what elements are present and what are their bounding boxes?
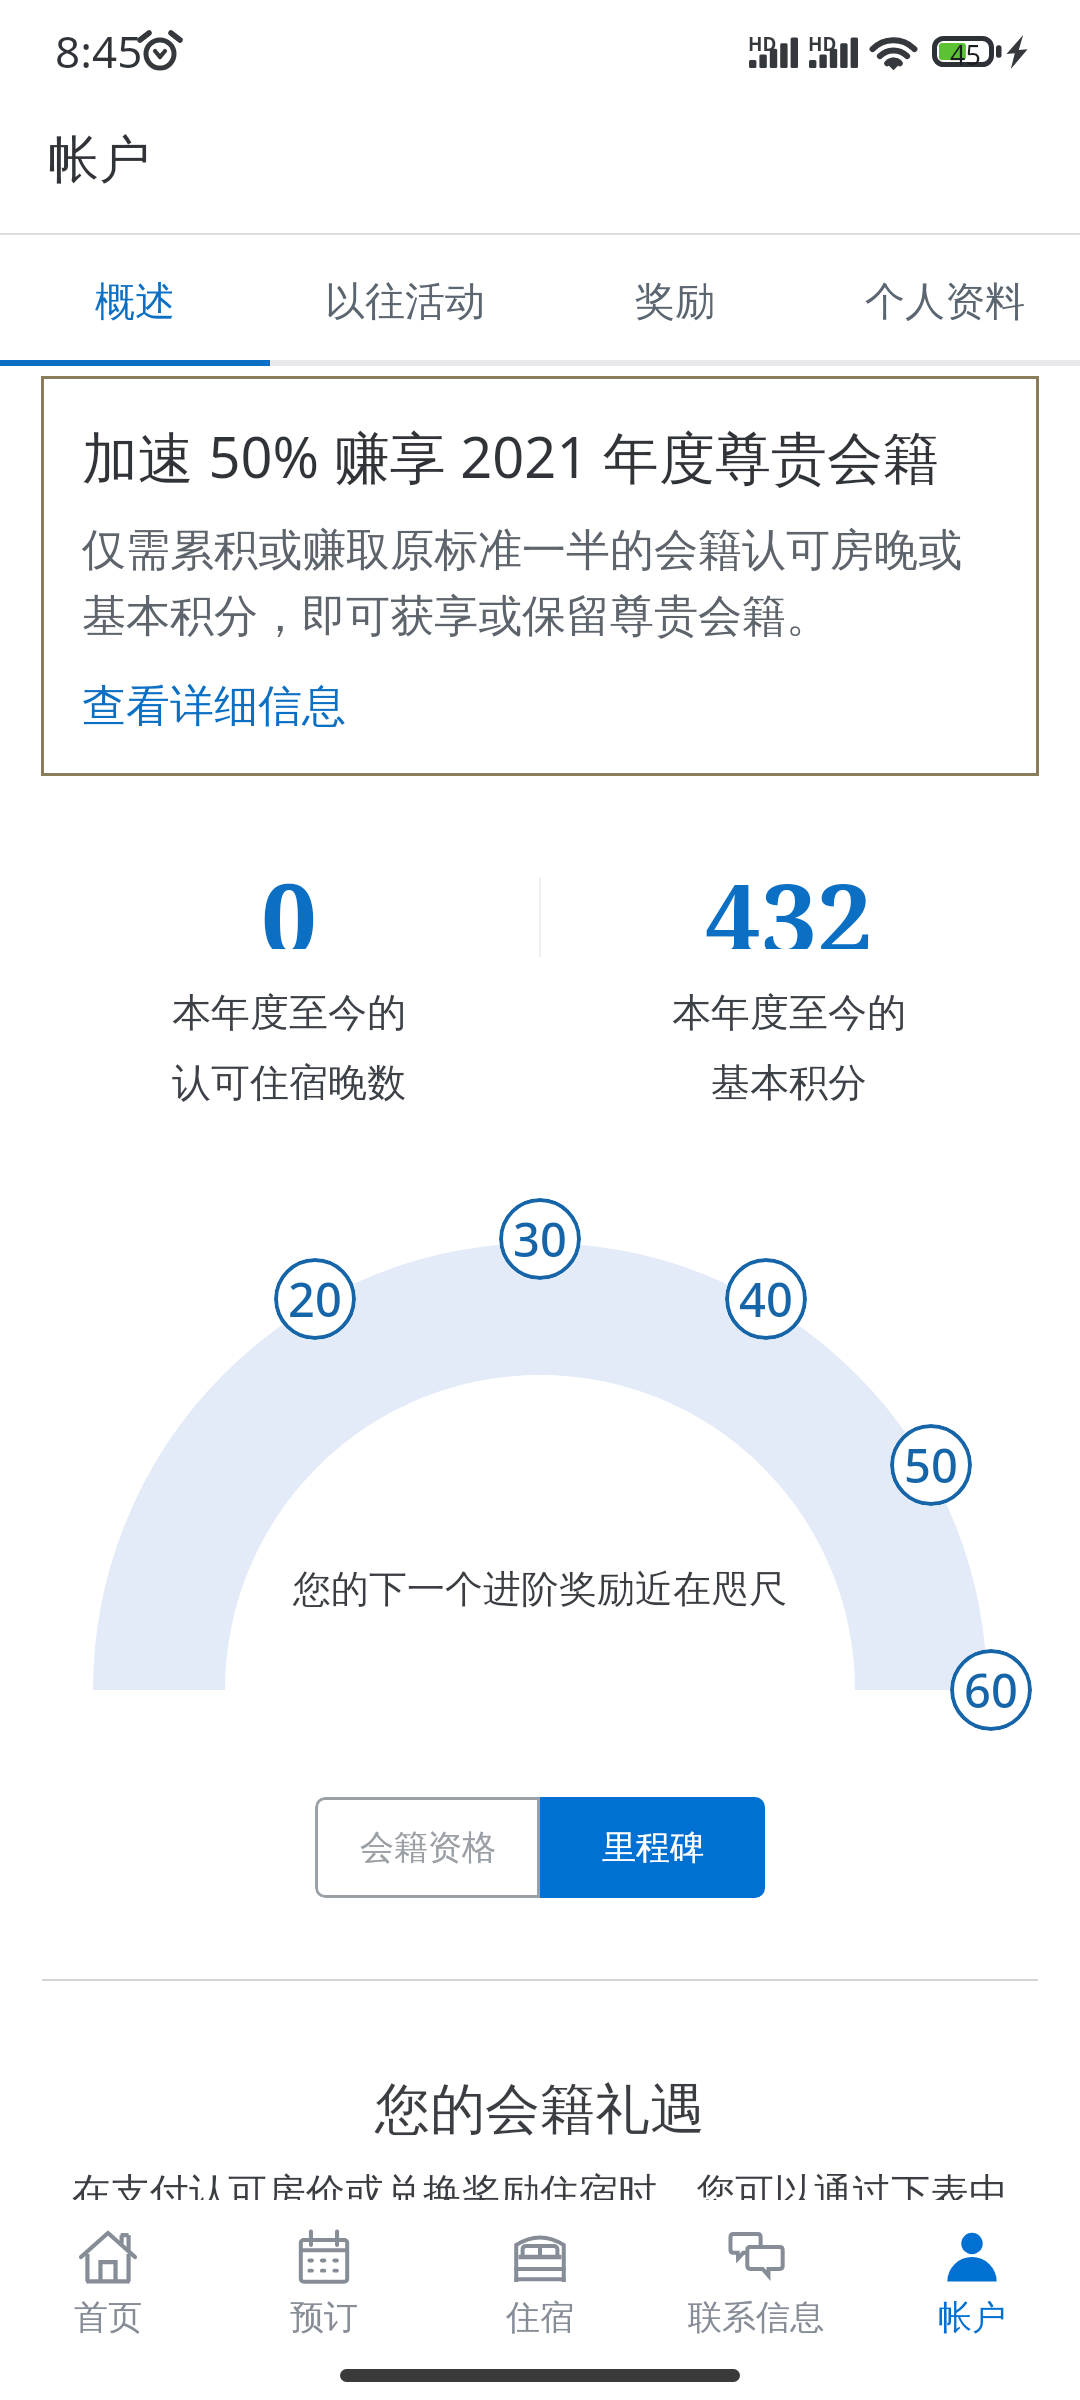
staticText: 概述 [95,276,175,326]
staticText: 里程碑 [602,1826,704,1869]
staticText: 首页 [74,2296,142,2339]
button[interactable]: Messages [648,2200,864,2345]
button[interactable]: 会籍资格 [315,1797,540,1898]
button[interactable]: 以往活动 [270,235,540,366]
button[interactable]: 60 [950,1649,1032,1731]
staticText: 40 [739,1267,793,1331]
button[interactable]: 20 [274,1258,356,1340]
button[interactable]: 里程碑 [540,1797,765,1898]
staticText: 仅需累积或赚取原标准一半的会籍认可房晚或 基本积分，即可获享或保留尊贵会籍。 [82,523,962,644]
button[interactable]: 40 [725,1258,807,1340]
button[interactable]: 奖励 [540,235,810,366]
staticText: 帐户 [938,2296,1006,2339]
staticText: 个人资料 [865,276,1025,326]
button[interactable]: 查看详细信息 [82,672,346,741]
button[interactable]: Home [0,2200,216,2345]
staticText: HD [748,31,777,57]
staticText: 本年度至今的 [172,988,406,1037]
button[interactable]: Stays [432,2200,648,2345]
staticText: 以往活动 [325,276,485,326]
staticText: HD [808,31,837,57]
staticText: 帐户 [48,128,150,192]
staticText: 奖励 [635,276,715,326]
staticText: 本年度至今的 [672,988,906,1037]
staticText: 0 [261,849,317,949]
button[interactable]: 概述 [0,235,270,366]
button[interactable]: 50 [890,1424,972,1506]
staticText: 60 [964,1658,1018,1722]
staticText: 您的下一个进阶奖励近在咫尺 [293,1565,787,1613]
staticText: 8:45 [55,21,143,81]
staticText: 30 [513,1207,567,1271]
staticText: 联系信息 [688,2296,824,2339]
staticText: 基本积分 [711,1058,867,1107]
button[interactable]: Bookings [216,2200,432,2345]
staticText: 认可住宿晚数 [172,1058,406,1107]
button[interactable]: Account [864,2200,1080,2345]
staticText: 住宿 [506,2296,574,2339]
button[interactable]: 30 [499,1198,581,1280]
staticText: 您的会籍礼遇 [375,2075,705,2144]
staticText: 432 [705,849,873,949]
staticText: 50 [904,1433,958,1497]
staticText: 在支付认可房价或兑换奖励住宿时，您可以通过下表中 [72,2168,1008,2217]
button[interactable]: 个人资料 [810,235,1080,366]
staticText: 45 [950,36,981,67]
staticText: 预订 [290,2296,358,2339]
staticText: 加速 50% 赚享 2021 年度尊贵会籍 [82,418,939,494]
staticText: 会籍资格 [360,1826,496,1869]
staticText: 查看详细信息 [82,679,346,734]
staticText: 20 [288,1267,342,1331]
button[interactable]: 加速 50% 赚享 2021 年度尊贵会籍 [41,376,1039,776]
